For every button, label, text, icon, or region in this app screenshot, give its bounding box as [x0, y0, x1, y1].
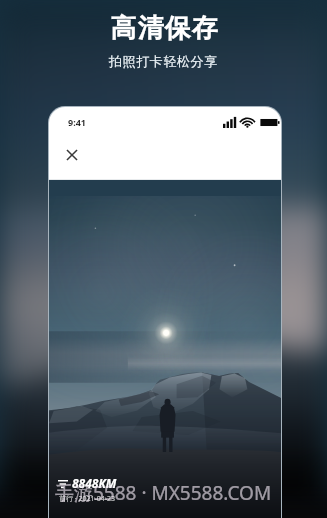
staticText: 8848KM: [72, 475, 117, 491]
button[interactable]: Close: [60, 143, 84, 167]
staticText: 前行 · 2021-04-23: [59, 494, 116, 504]
staticText: 高清保存: [110, 12, 218, 45]
staticText: 手游5588 · MX5588.COM: [55, 480, 272, 506]
staticText: 拍照打卡轻松分享: [109, 53, 218, 69]
staticText: 9:41: [68, 116, 86, 128]
